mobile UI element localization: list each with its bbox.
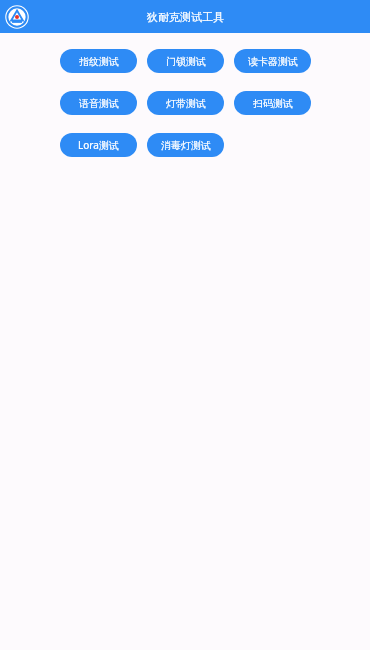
staticText: 读卡器测试 bbox=[248, 55, 298, 68]
button[interactable]: 灯带测试 bbox=[147, 91, 224, 115]
staticText: 门锁测试 bbox=[166, 55, 206, 68]
button[interactable]: Lora测试 bbox=[60, 133, 137, 157]
button[interactable]: 门锁测试 bbox=[147, 49, 224, 73]
staticText: 消毒灯测试 bbox=[161, 139, 211, 152]
button[interactable]: 语音测试 bbox=[60, 91, 137, 115]
staticText: 灯带测试 bbox=[166, 97, 206, 110]
staticText: 语音测试 bbox=[79, 97, 119, 110]
button[interactable]: 指纹测试 bbox=[60, 49, 137, 73]
staticText: Lora测试 bbox=[78, 138, 119, 152]
button[interactable]: 读卡器测试 bbox=[234, 49, 311, 73]
button[interactable]: Logo bbox=[3, 3, 31, 31]
staticText: 指纹测试 bbox=[79, 55, 119, 68]
staticText: 扫码测试 bbox=[253, 97, 293, 110]
button[interactable]: 消毒灯测试 bbox=[147, 133, 224, 157]
button[interactable]: 扫码测试 bbox=[234, 91, 311, 115]
staticText: 狄耐克测试工具 bbox=[147, 10, 224, 24]
